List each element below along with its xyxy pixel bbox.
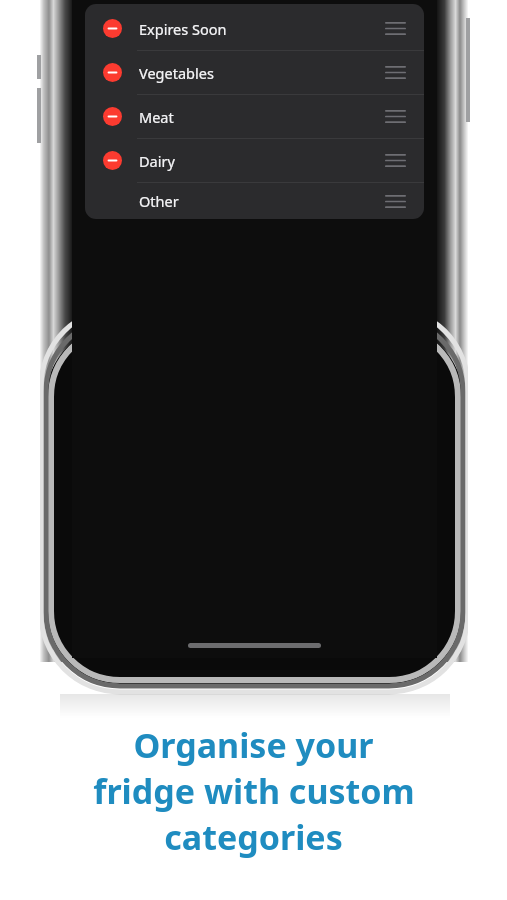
staticText: Other: [139, 191, 179, 211]
button[interactable]: Reorder Dairy: [378, 139, 412, 182]
staticText: Vegetables: [139, 63, 214, 83]
staticText: fridge with custom: [93, 768, 415, 814]
button[interactable]: Reorder Meat: [378, 95, 412, 138]
button[interactable]: Delete Meat: [85, 95, 424, 138]
button[interactable]: Delete Dairy: [103, 151, 122, 170]
button[interactable]: Delete Vegetables: [85, 51, 424, 94]
staticText: categories: [164, 814, 343, 860]
button[interactable]: Other: [85, 183, 424, 219]
button[interactable]: Delete Expires Soon: [103, 19, 122, 38]
button[interactable]: Delete Dairy: [85, 139, 424, 182]
button[interactable]: Reorder Vegetables: [378, 51, 412, 94]
staticText: Expires Soon: [139, 19, 227, 39]
staticText: Dairy: [139, 151, 175, 171]
staticText: Meat: [139, 107, 174, 127]
button[interactable]: Reorder Other: [378, 183, 412, 219]
button[interactable]: Delete Meat: [103, 107, 122, 126]
button[interactable]: Delete Expires Soon: [85, 7, 424, 50]
staticText: Organise your: [133, 722, 374, 768]
button[interactable]: Delete Vegetables: [103, 63, 122, 82]
button[interactable]: Reorder Expires Soon: [378, 7, 412, 50]
